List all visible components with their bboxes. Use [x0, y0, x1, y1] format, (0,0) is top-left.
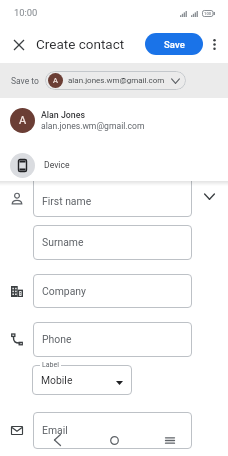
- button[interactable]: Phone: [33, 322, 192, 357]
- staticText: 10:00: [14, 7, 38, 18]
- button[interactable]: A: [0, 103, 228, 138]
- staticText: alan.jones.wm@gmail.com: [41, 121, 145, 131]
- staticText: A: [53, 76, 58, 85]
- button[interactable]: First name: [33, 176, 192, 217]
- staticText: Device: [44, 160, 70, 170]
- button[interactable]: Close: [7, 33, 30, 56]
- button[interactable]: Surname: [33, 225, 192, 260]
- button[interactable]: Back: [45, 428, 69, 452]
- staticText: Alan Jones: [41, 110, 86, 120]
- staticText: Mobile: [41, 374, 73, 386]
- button[interactable]: [32, 365, 132, 395]
- staticText: Save to: [11, 76, 39, 86]
- staticText: First name: [42, 195, 92, 207]
- button[interactable]: Home: [102, 428, 126, 452]
- button[interactable]: Expand name fields: [199, 186, 220, 207]
- staticText: Phone: [42, 333, 72, 345]
- staticText: 100: [204, 11, 212, 16]
- button[interactable]: Device: [0, 148, 228, 182]
- button[interactable]: A: [45, 71, 186, 90]
- staticText: Surname: [42, 236, 84, 248]
- button[interactable]: Recent apps: [158, 428, 182, 452]
- staticText: alan.jones.wm@gmail.com: [68, 76, 165, 85]
- staticText: Save: [164, 39, 185, 50]
- button[interactable]: Company: [33, 274, 192, 308]
- staticText: Label: [42, 361, 59, 369]
- staticText: Create contact: [36, 36, 125, 52]
- button[interactable]: More options: [204, 34, 224, 54]
- staticText: Email: [42, 424, 68, 436]
- button[interactable]: Email: [33, 412, 192, 449]
- staticText: Company: [42, 285, 86, 297]
- button[interactable]: Save: [145, 33, 203, 55]
- staticText: A: [19, 114, 27, 127]
